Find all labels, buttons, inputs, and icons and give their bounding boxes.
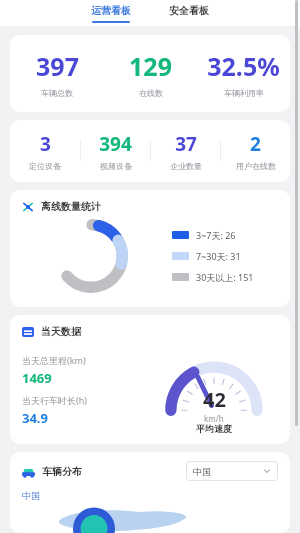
staticText: 企业数量 [170, 161, 202, 171]
staticText: 当天总里程(km) [22, 354, 86, 366]
button[interactable]: 32.5% [197, 49, 290, 98]
staticText: 1469 [22, 369, 52, 387]
button[interactable]: 2 [221, 131, 290, 171]
button[interactable]: 运营看板 [81, 0, 141, 23]
staticText: 30天以上: 151 [196, 271, 254, 283]
staticText: 当天数据 [41, 325, 81, 338]
staticText: 用户在线数 [236, 161, 276, 171]
staticText: 37 [175, 131, 197, 157]
staticText: 运营看板 [91, 4, 131, 17]
staticText: 在线数 [139, 88, 163, 98]
staticText: 视频设备 [100, 161, 132, 171]
other: 离线统计 [22, 201, 34, 213]
staticText: 当天行车时长(h) [22, 394, 87, 406]
staticText: 车辆分布 [42, 465, 82, 478]
button[interactable]: 397 [10, 49, 104, 98]
other: 车辆分布 [22, 465, 35, 478]
staticText: 定位设备 [29, 161, 61, 171]
other: 当天数据 [22, 326, 34, 338]
staticText: 2 [250, 131, 261, 157]
staticText: 7~30天: 31 [196, 250, 241, 262]
staticText: 42 [203, 386, 226, 413]
button[interactable]: 中国 [186, 461, 278, 481]
button[interactable]: 129 [104, 49, 197, 98]
button[interactable]: 3 [10, 131, 80, 171]
staticText: 129 [129, 49, 172, 83]
staticText: 中国 [193, 466, 211, 477]
staticText: 34.9 [22, 409, 48, 427]
staticText: 32.5% [207, 49, 280, 83]
staticText: 车辆利用率 [224, 88, 264, 98]
button[interactable]: 394 [81, 131, 150, 171]
button[interactable]: 安全看板 [159, 0, 219, 17]
button[interactable]: 37 [151, 131, 220, 171]
staticText: 平均速度 [196, 423, 232, 434]
staticText: km/h [204, 413, 224, 424]
staticText: 397 [36, 49, 79, 83]
staticText: 3 [40, 131, 51, 157]
staticText: 安全看板 [169, 4, 209, 17]
staticText: 车辆总数 [41, 88, 73, 98]
staticText: 394 [99, 131, 132, 157]
staticText: 中国 [22, 490, 40, 501]
staticText: 离线数量统计 [41, 200, 101, 213]
staticText: 3~7天: 26 [196, 229, 236, 241]
